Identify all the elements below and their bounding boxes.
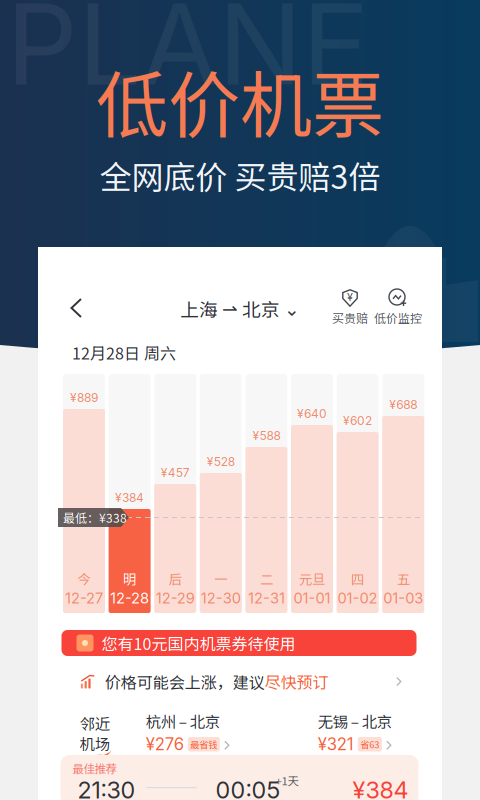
staticText: 尽快预订 [265,670,329,693]
staticText: 12-28 [110,589,149,607]
staticText: 全网底价 买贵赔3倍 [99,152,380,198]
button[interactable]: 最佳推荐 [60,755,418,800]
button[interactable]: 杭州 – 北京 [146,710,254,754]
staticText: 价格可能会上涨，建议 [105,670,265,693]
button[interactable]: Back [66,297,88,319]
staticText: ¥457 [161,465,190,480]
staticText: ¥688 [389,397,417,412]
staticText: 21:30 [77,776,135,800]
staticText: 无锡 – 北京 [318,710,392,732]
staticText: 买贵赔 [332,309,368,326]
button[interactable]: 无锡 – 北京 [318,710,426,754]
button[interactable]: ¥457 [154,374,196,613]
staticText: 01-03 [383,589,423,607]
button[interactable]: ¥889 [63,374,105,613]
staticText: 二 [260,569,273,588]
staticText: 12-29 [156,589,195,607]
staticText: ¥528 [207,454,235,469]
staticText: 后 [169,569,182,588]
staticText: ¥384 [352,776,408,800]
staticText: 01-01 [293,589,330,607]
staticText: 12月28日 周六 [72,341,176,364]
staticText: 最低：¥338 [63,509,127,526]
button[interactable]: ¥602 [337,374,379,613]
staticText: ¥588 [252,428,280,443]
button[interactable]: 您有10元国内机票券待使用 [61,630,416,656]
staticText: 最省钱 [190,737,217,751]
staticText: 12-30 [201,589,241,607]
staticText: 四 [351,569,364,588]
button[interactable]: 低价监控 [374,289,422,326]
button[interactable]: ¥688 [382,374,424,613]
staticText: 低价监控 [374,309,422,326]
button[interactable]: ¥640 [291,374,333,613]
staticText: 最佳推荐 [72,760,116,776]
button[interactable]: 价格可能会上涨，建议 [64,663,416,700]
staticText: 01-02 [338,589,378,607]
staticText: 00:05 [215,776,280,800]
staticText: 省63 [360,737,379,751]
button[interactable]: ¥384 [109,374,151,613]
staticText: ¥321 [318,734,354,754]
staticText: 元旦 [299,569,325,588]
staticText: 邻近 [80,712,110,734]
staticText: ¥602 [343,413,372,428]
staticText: 12-27 [65,589,103,607]
staticText: ¥ [347,290,353,303]
staticText: PLANE [6,0,369,111]
staticText: 一 [214,569,227,588]
button[interactable]: ¥588 [245,374,287,613]
staticText: ¥384 [115,490,144,505]
button[interactable]: ¥528 [200,374,242,613]
staticText: 杭州 – 北京 [146,710,220,732]
staticText: 明 [123,569,136,588]
staticText: 低价机票 [96,48,384,152]
staticText: +1天 [275,772,298,788]
staticText: 12-31 [248,589,285,607]
staticText: 今 [77,569,90,588]
staticText: 上海 ⇀ 北京 ⌄ [180,295,300,322]
staticText: 机场 [80,732,110,754]
staticText: ¥640 [297,406,327,421]
staticText: ¥889 [70,390,98,405]
button[interactable]: ¥ [332,289,368,326]
staticText: 您有10元国内机票券待使用 [101,631,295,655]
staticText: 五 [397,569,410,588]
staticText: ¥276 [146,734,184,754]
